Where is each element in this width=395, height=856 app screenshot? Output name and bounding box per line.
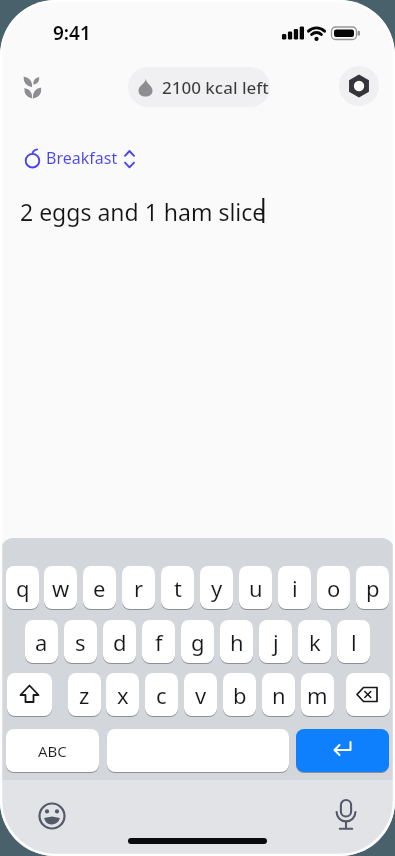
button[interactable]: Breakfast xyxy=(20,144,142,174)
staticText: Breakfast xyxy=(46,147,118,169)
button[interactable]: s xyxy=(64,620,97,663)
staticText: ABC xyxy=(38,741,67,761)
staticText: e xyxy=(93,573,106,603)
button[interactable]: f xyxy=(142,620,175,663)
button[interactable]: n xyxy=(262,673,295,716)
button[interactable]: v xyxy=(184,673,217,716)
staticText: k xyxy=(309,627,321,657)
button[interactable]: g xyxy=(181,620,214,663)
button[interactable]: u xyxy=(239,566,272,609)
button[interactable]: c xyxy=(145,673,178,716)
button[interactable]: z xyxy=(68,673,101,716)
staticText: m xyxy=(307,680,328,710)
button[interactable] xyxy=(7,673,52,716)
button[interactable]: 2100 kcal left xyxy=(128,67,270,107)
button[interactable]: y xyxy=(200,566,233,609)
button[interactable]: w xyxy=(44,566,77,609)
button[interactable] xyxy=(107,729,289,772)
button[interactable] xyxy=(339,66,379,106)
button[interactable]: a xyxy=(25,620,58,663)
button[interactable]: x xyxy=(106,673,139,716)
button[interactable]: h xyxy=(220,620,253,663)
button[interactable] xyxy=(18,70,48,102)
staticText: h xyxy=(230,627,244,657)
button[interactable]: l xyxy=(337,620,370,663)
button[interactable]: t xyxy=(161,566,194,609)
button[interactable]: b xyxy=(223,673,256,716)
staticText: p xyxy=(366,573,380,603)
staticText: x xyxy=(117,680,129,710)
button[interactable]: q xyxy=(6,566,39,609)
staticText: j xyxy=(273,627,279,657)
button[interactable] xyxy=(346,673,390,716)
staticText: o xyxy=(327,573,341,603)
button[interactable]: i xyxy=(278,566,311,609)
button[interactable] xyxy=(330,800,362,832)
button[interactable]: e xyxy=(83,566,116,609)
staticText: 9:41 xyxy=(53,20,91,46)
staticText: l xyxy=(351,627,357,657)
button[interactable] xyxy=(36,800,68,832)
button[interactable]: p xyxy=(356,566,389,609)
staticText: y xyxy=(211,573,223,603)
staticText: w xyxy=(52,573,70,603)
button[interactable] xyxy=(296,729,389,772)
staticText: s xyxy=(75,627,86,657)
staticText: t xyxy=(174,573,182,603)
staticText: d xyxy=(113,627,127,657)
button[interactable]: j xyxy=(259,620,292,663)
staticText: r xyxy=(134,573,144,603)
staticText: c xyxy=(156,680,167,710)
staticText: f xyxy=(155,627,163,657)
button[interactable]: r xyxy=(122,566,155,609)
button[interactable]: o xyxy=(317,566,350,609)
staticText: i xyxy=(292,573,298,603)
staticText: 2 eggs and 1 ham slice xyxy=(20,196,266,227)
staticText: a xyxy=(35,627,48,657)
staticText: b xyxy=(233,680,247,710)
button[interactable]: d xyxy=(103,620,136,663)
staticText: g xyxy=(191,627,205,657)
staticText: 2100 kcal left xyxy=(162,76,269,99)
staticText: n xyxy=(272,680,286,710)
staticText: v xyxy=(195,680,207,710)
staticText: q xyxy=(16,573,30,603)
button[interactable]: m xyxy=(301,673,334,716)
button[interactable]: ABC xyxy=(6,729,99,772)
staticText: u xyxy=(249,573,263,603)
staticText: z xyxy=(79,680,90,710)
button[interactable]: k xyxy=(298,620,331,663)
